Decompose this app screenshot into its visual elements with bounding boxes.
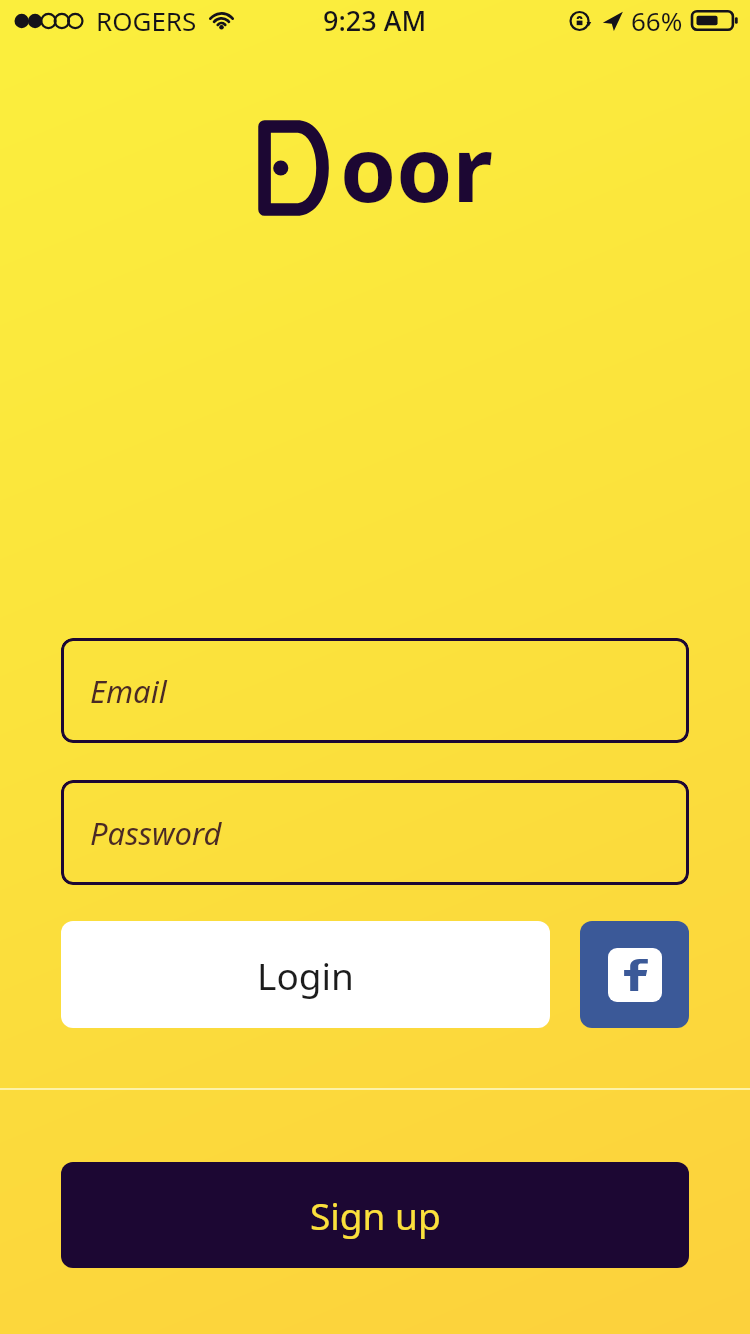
staticText: Login — [257, 950, 354, 1000]
staticText: 66% — [631, 3, 683, 38]
staticText: 9:23 AM — [323, 2, 427, 39]
button[interactable]: Password — [61, 780, 689, 885]
staticText: oor — [340, 106, 493, 229]
staticText: Email — [90, 670, 167, 712]
button[interactable]: Sign in with Facebook — [580, 921, 689, 1028]
button[interactable]: Sign up — [61, 1162, 689, 1268]
staticText: ROGERS — [96, 3, 197, 38]
button[interactable]: Email — [61, 638, 689, 743]
button[interactable]: Login — [61, 921, 550, 1028]
staticText: Sign up — [310, 1190, 441, 1240]
staticText: Password — [90, 812, 222, 854]
